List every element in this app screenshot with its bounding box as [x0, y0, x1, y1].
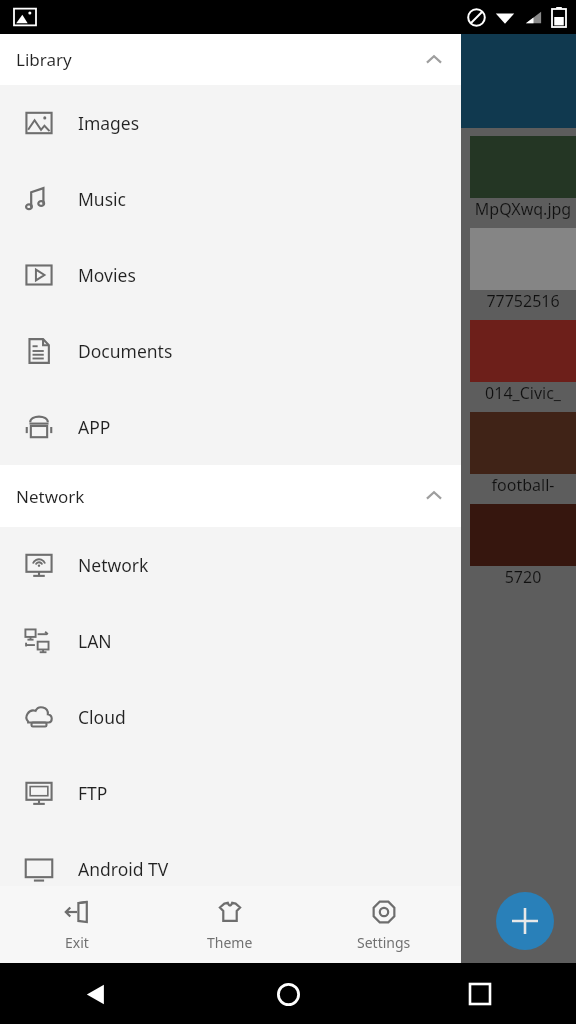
button[interactable]: Exit: [0, 886, 153, 963]
button[interactable]: FTP: [0, 755, 461, 831]
button[interactable]: Add: [496, 892, 554, 950]
button[interactable]: Images: [0, 85, 461, 161]
button[interactable]: Cloud: [0, 679, 461, 755]
button[interactable]: Documents: [0, 313, 461, 389]
staticText: APP: [78, 415, 111, 439]
button[interactable]: Home: [264, 970, 312, 1018]
button[interactable]: Music: [0, 161, 461, 237]
staticText: Cloud: [78, 705, 126, 729]
staticText: Theme: [207, 933, 253, 952]
button[interactable]: Android TV: [0, 831, 461, 907]
staticText: Images: [78, 111, 140, 135]
staticText: Music: [78, 187, 126, 211]
staticText: Library: [16, 48, 72, 71]
button[interactable]: Network: [0, 527, 461, 603]
staticText: 77752516: [470, 290, 576, 312]
staticText: 5720: [470, 566, 576, 588]
button[interactable]: Back: [72, 970, 120, 1018]
staticText: MpQXwq.jpg: [470, 198, 576, 220]
staticText: Exit: [65, 933, 89, 952]
staticText: FTP: [78, 781, 108, 805]
staticText: Documents: [78, 339, 173, 363]
button[interactable]: Library: [0, 34, 461, 85]
staticText: Network: [16, 485, 85, 508]
staticText: Movies: [78, 263, 136, 287]
button[interactable]: Theme: [153, 886, 307, 963]
staticText: Network: [78, 553, 149, 577]
staticText: 014_Civic_: [470, 382, 576, 404]
staticText: football-: [470, 474, 576, 496]
button[interactable]: Settings: [307, 886, 461, 963]
button[interactable]: Movies: [0, 237, 461, 313]
button[interactable]: APP: [0, 389, 461, 465]
button[interactable]: Recents: [456, 970, 504, 1018]
button[interactable]: LAN: [0, 603, 461, 679]
staticText: Settings: [357, 933, 411, 952]
staticText: Android TV: [78, 857, 169, 881]
button[interactable]: Network: [0, 465, 461, 527]
staticText: LAN: [78, 629, 112, 653]
